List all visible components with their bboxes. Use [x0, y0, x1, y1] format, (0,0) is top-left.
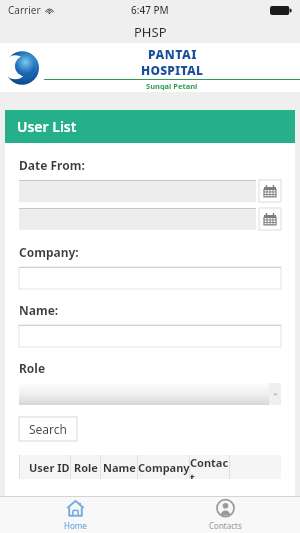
button[interactable]: Contacts	[150, 497, 300, 533]
button[interactable]: Search	[19, 417, 77, 441]
staticText: Company	[138, 460, 190, 475]
staticText: User ID	[29, 460, 70, 475]
staticText: Date From:	[19, 157, 85, 173]
staticText: Search	[29, 421, 67, 437]
staticText: Carrier	[8, 3, 41, 17]
button[interactable]	[19, 267, 281, 289]
button[interactable]	[19, 180, 256, 202]
staticText: Role	[19, 360, 46, 376]
staticText: Home	[64, 520, 87, 531]
button[interactable]	[19, 383, 281, 405]
staticText: PANTAI	[148, 46, 197, 62]
button[interactable]: Pick date	[259, 208, 281, 230]
staticText: Company:	[19, 244, 79, 260]
button[interactable]	[19, 208, 256, 230]
button[interactable]	[19, 325, 281, 347]
button[interactable]: Home	[0, 497, 150, 533]
staticText: Name	[103, 460, 136, 475]
staticText: User List	[17, 117, 77, 136]
staticText: Contact	[190, 455, 230, 479]
staticText: Name:	[19, 302, 59, 318]
staticText: Sungai Petani	[146, 81, 198, 90]
staticText: 6:47 PM	[131, 3, 169, 17]
button[interactable]: Pick date	[259, 180, 281, 202]
staticText: PHSP	[134, 23, 167, 41]
staticText: HOSPITAL	[141, 62, 204, 78]
staticText: Role	[74, 460, 98, 475]
staticText: Contacts	[209, 520, 242, 531]
